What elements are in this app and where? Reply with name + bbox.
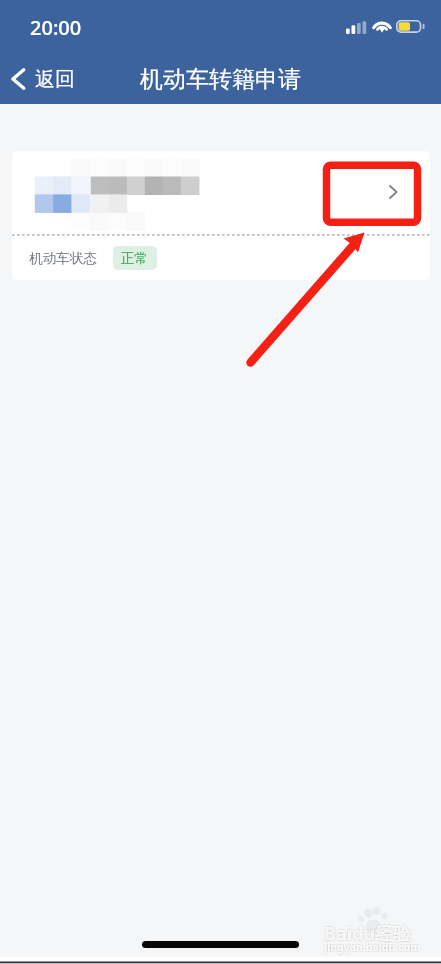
staticText: 正常 — [121, 250, 149, 267]
button[interactable]: 查看详情 — [362, 167, 422, 219]
staticText: jingyan.baidu.com — [323, 941, 420, 955]
staticText: jingyan.baidu.com — [325, 939, 422, 953]
staticText: jingyan.baidu.com — [323, 939, 420, 953]
button[interactable]: 机动车信息，查看详情 — [12, 151, 430, 234]
staticText: Baidu经验 — [324, 921, 412, 946]
button[interactable]: 返回 — [0, 54, 89, 104]
staticText: 机动车转籍申请 — [140, 65, 301, 94]
staticText: Baidu经验 — [325, 922, 413, 947]
staticText: 机动车状态 — [29, 250, 97, 267]
staticText: jingyan.baidu.com — [324, 940, 421, 954]
staticText: jingyan.baidu.com — [325, 941, 422, 955]
staticText: 20:00 — [30, 14, 82, 41]
staticText: Baidu经验 — [323, 920, 411, 945]
other: 返回 — [11, 68, 25, 90]
staticText: Baidu经验 — [325, 920, 413, 945]
staticText: Baidu经验 — [323, 922, 411, 947]
staticText: 返回 — [35, 67, 75, 92]
